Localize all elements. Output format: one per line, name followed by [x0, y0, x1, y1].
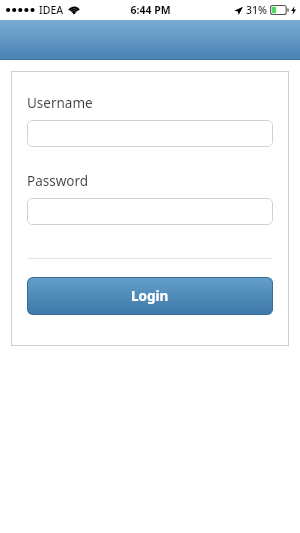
button[interactable]: Username input	[27, 120, 273, 147]
button[interactable]: Password input	[27, 198, 273, 225]
staticText: 31%	[246, 3, 267, 17]
staticText: Login	[131, 287, 169, 305]
staticText: Username	[27, 94, 93, 112]
staticText: IDEA	[39, 3, 64, 17]
button[interactable]: Login	[27, 277, 273, 315]
staticText: Password	[27, 172, 89, 190]
staticText: 6:44 PM	[130, 3, 171, 17]
